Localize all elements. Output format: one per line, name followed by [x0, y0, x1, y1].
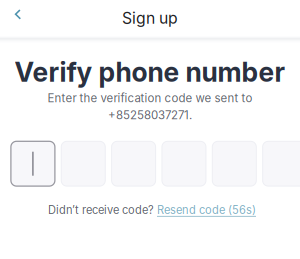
- button[interactable]: Back: [2, 0, 34, 30]
- staticText: Verify phone number: [14, 56, 285, 88]
- staticText: Didn’t receive code?: [48, 203, 157, 217]
- staticText: Sign up: [122, 8, 178, 27]
- staticText: +85258037271.: [108, 108, 192, 122]
- staticText: Enter the verification code we sent to: [47, 91, 252, 105]
- button[interactable]: Resend code (56s): [157, 203, 256, 217]
- staticText: Resend code (56s): [157, 203, 256, 217]
